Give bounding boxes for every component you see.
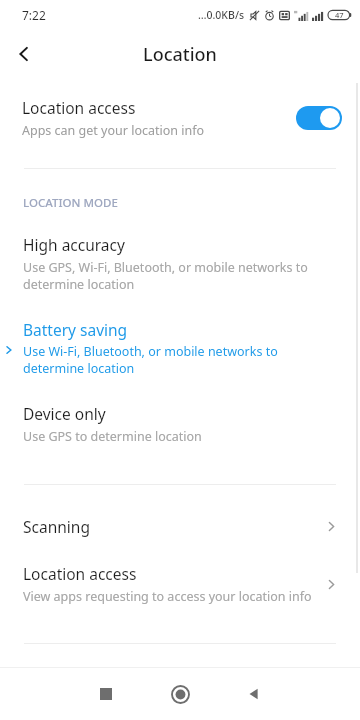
staticText: Use GPS, Wi-Fi, Bluetooth, or mobile net…: [23, 259, 334, 293]
staticText: Scanning: [23, 516, 325, 537]
button[interactable]: Battery saving: [0, 319, 360, 377]
staticText: Location access: [22, 97, 136, 118]
staticText: Battery saving: [23, 319, 128, 340]
staticText: 47: [335, 10, 344, 20]
staticText: High accuracy: [23, 234, 125, 255]
staticText: …0.0KB/s: [198, 8, 245, 22]
button[interactable]: High accuracy: [0, 234, 360, 293]
button[interactable]: Location access: [0, 563, 360, 605]
button[interactable]: Scanning: [0, 507, 360, 545]
button[interactable]: Back: [230, 670, 278, 718]
button[interactable]: Home: [156, 670, 204, 718]
staticText: Use GPS to determine location: [23, 428, 202, 445]
staticText: Device only: [23, 403, 106, 424]
button[interactable]: Device only: [0, 403, 360, 445]
button[interactable]: Back: [0, 30, 48, 78]
button[interactable]: Recent apps: [82, 670, 130, 718]
staticText: Location: [143, 42, 217, 67]
staticText: View apps requesting to access your loca…: [23, 588, 312, 605]
staticText: Use Wi-Fi, Bluetooth, or mobile networks…: [23, 343, 334, 377]
staticText: Apps can get your location info: [22, 122, 205, 139]
button[interactable]: Location access: [0, 78, 360, 158]
staticText: Location access: [23, 563, 137, 584]
staticText: LOCATION MODE: [23, 195, 118, 211]
staticText: 7:22: [22, 7, 46, 23]
